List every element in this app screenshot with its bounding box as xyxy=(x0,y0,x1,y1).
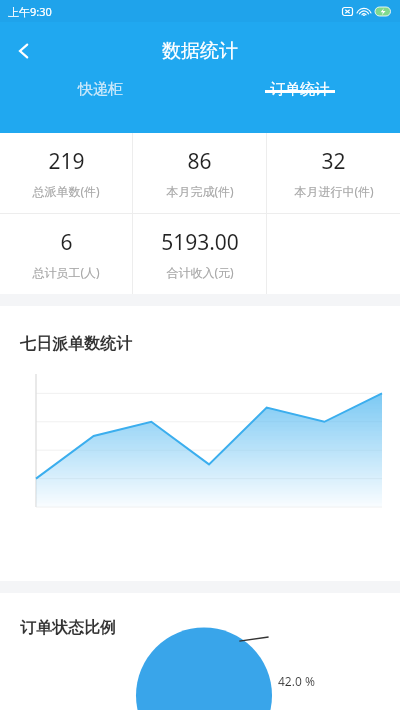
staticText: 总派单数(件) xyxy=(32,183,100,199)
staticText: 数据统计 xyxy=(162,39,238,63)
staticText: 本月完成(件) xyxy=(166,183,234,199)
staticText: 219 xyxy=(48,147,85,176)
staticText: 32 xyxy=(321,147,346,176)
button[interactable]: 6 xyxy=(0,214,132,294)
button[interactable]: 32 xyxy=(267,133,400,213)
button[interactable]: 订单统计 xyxy=(200,80,400,99)
staticText: 5193.00 xyxy=(161,228,239,257)
staticText: 七日派单数统计 xyxy=(20,334,132,354)
staticText: 上午9:30 xyxy=(8,4,52,19)
staticText: 快递柜 xyxy=(78,80,123,99)
staticText: 42.0 % xyxy=(278,673,315,689)
button[interactable]: 86 xyxy=(133,133,266,213)
staticText: 本月进行中(件) xyxy=(294,183,374,199)
staticText: 86 xyxy=(187,147,212,176)
staticText: 合计收入(元) xyxy=(166,264,234,280)
staticText: 6 xyxy=(60,228,73,257)
staticText: 订单统计 xyxy=(270,80,330,99)
button[interactable]: 5193.00 xyxy=(133,214,266,294)
button[interactable]: 快递柜 xyxy=(0,80,200,99)
button[interactable]: 219 xyxy=(0,133,132,213)
staticText: 总计员工(人) xyxy=(32,264,100,280)
button[interactable]: 返回 xyxy=(0,27,48,75)
staticText: 订单状态比例 xyxy=(20,618,116,638)
